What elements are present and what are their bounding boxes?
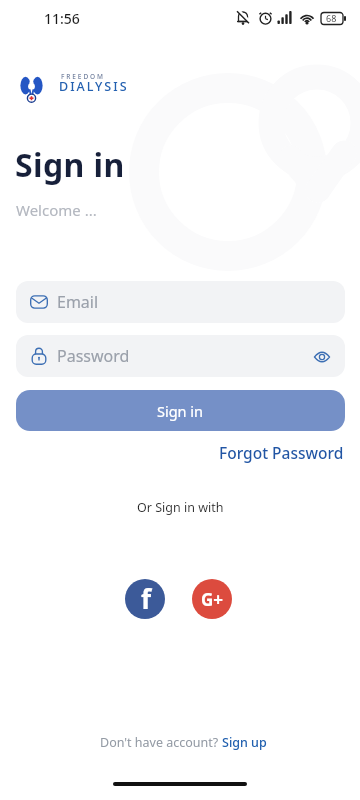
- button[interactable]: f: [125, 579, 165, 619]
- staticText: 68: [326, 12, 337, 24]
- button[interactable]: Forgot Password: [219, 442, 344, 463]
- staticText: Welcome ...: [16, 200, 97, 220]
- staticText: Sign in: [15, 143, 125, 187]
- staticText: Password: [57, 345, 130, 367]
- staticText: 11:56: [44, 9, 80, 28]
- staticText: Don't have account?: [100, 734, 222, 751]
- staticText: Email: [57, 291, 99, 313]
- staticText: FREEDOM: [61, 72, 105, 81]
- staticText: G+: [201, 588, 224, 611]
- staticText: Or Sign in with: [137, 499, 224, 516]
- staticText: f: [141, 581, 152, 616]
- button[interactable]: G+: [192, 579, 232, 619]
- staticText: Sign in: [157, 401, 204, 421]
- staticText: DIALYSIS: [59, 78, 129, 95]
- button[interactable]: Sign up: [222, 734, 267, 751]
- button[interactable]: Sign in: [16, 390, 345, 431]
- button[interactable]: Password: [16, 335, 345, 377]
- button[interactable]: Email: [16, 281, 345, 323]
